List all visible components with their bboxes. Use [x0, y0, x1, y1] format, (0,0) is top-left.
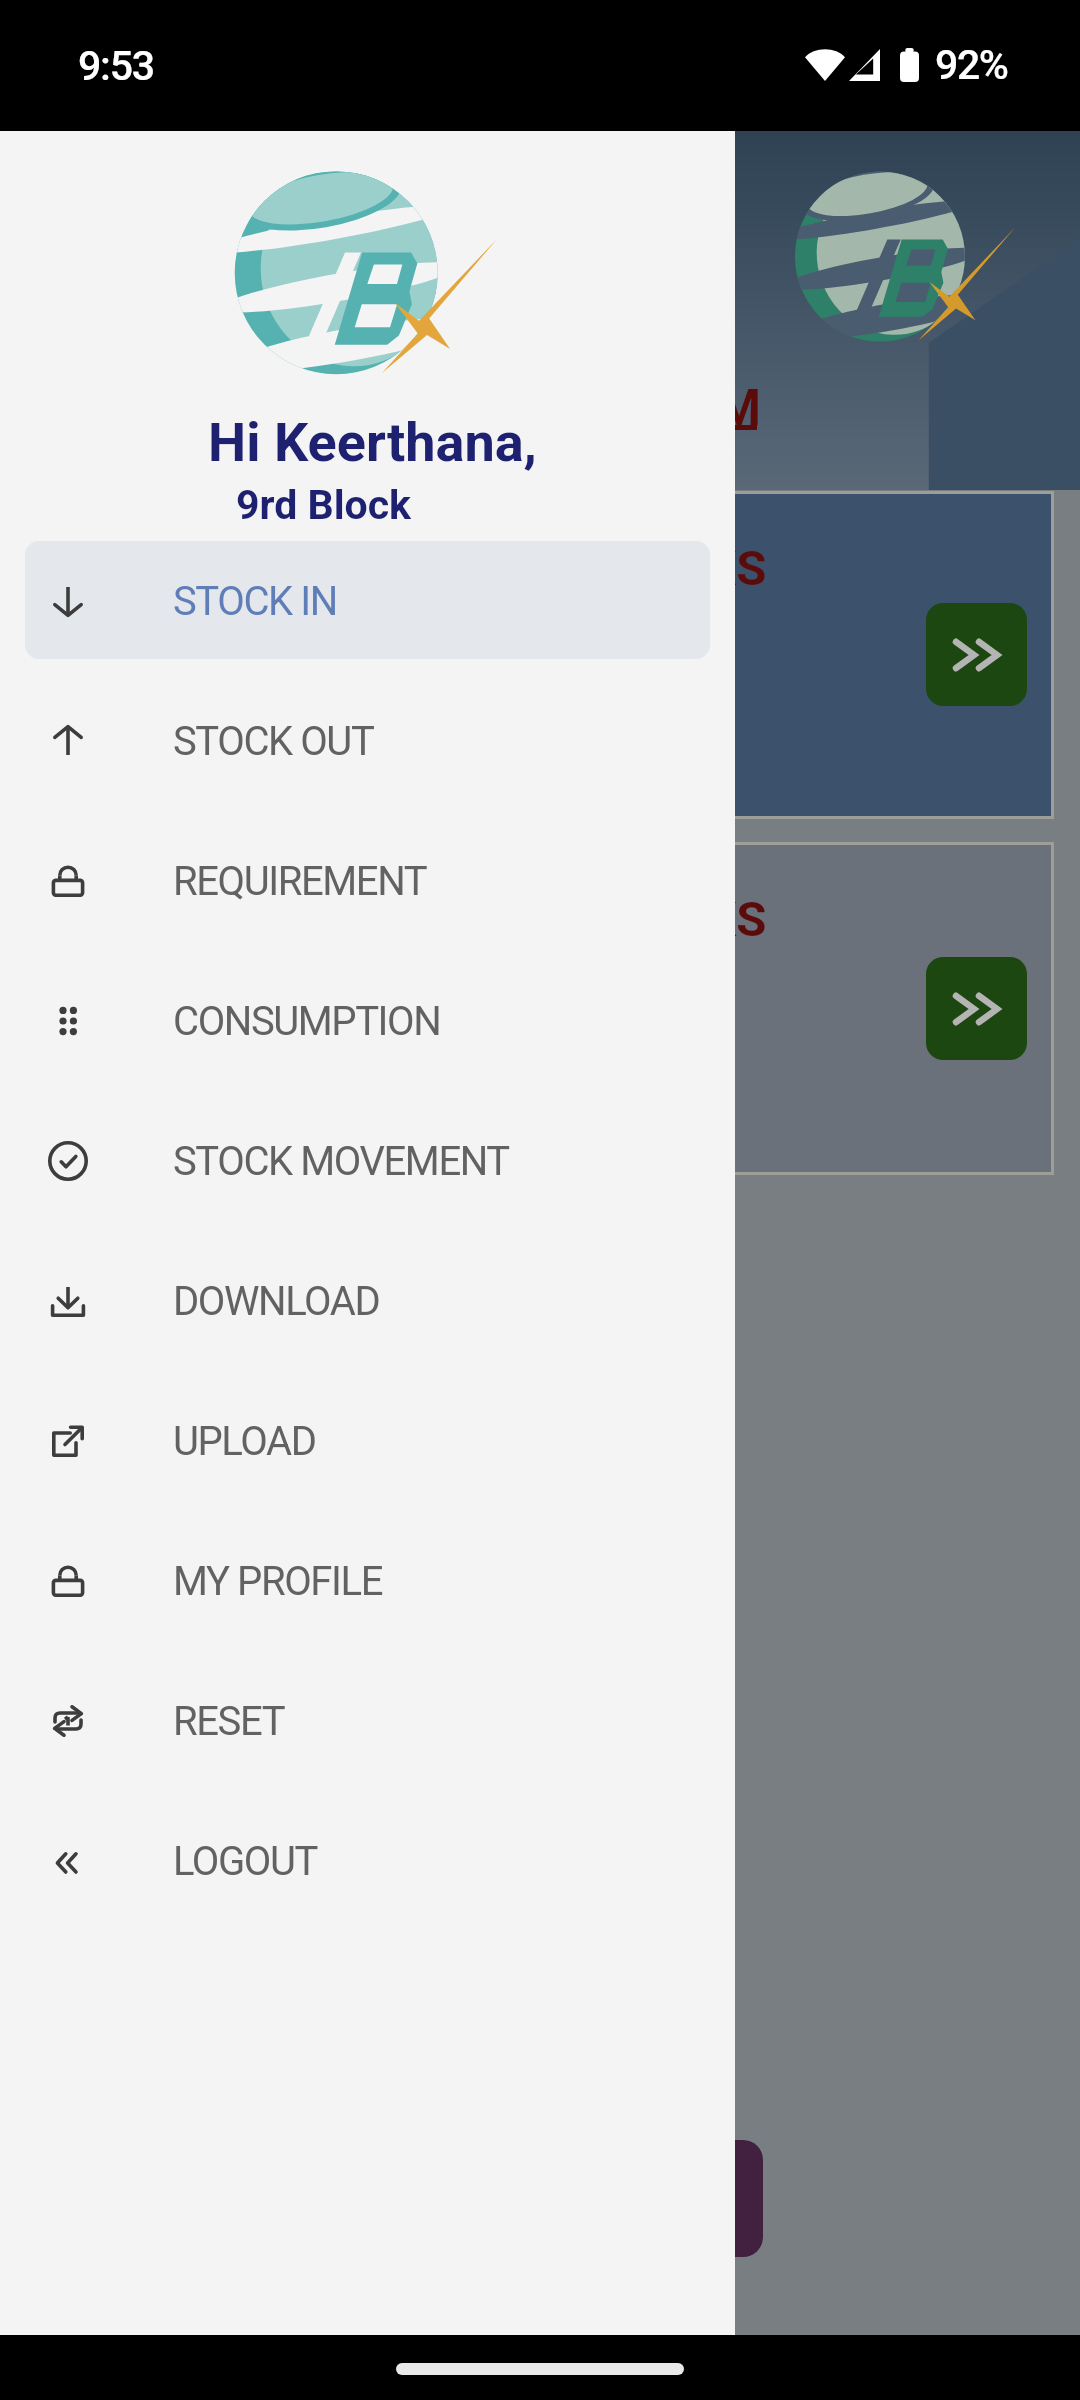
- button[interactable]: DOWNLOAD: [25, 1231, 710, 1371]
- staticText: 9:53: [78, 42, 154, 90]
- button[interactable]: STOCK OUT: [25, 671, 710, 811]
- button[interactable]: UPLOAD: [25, 1371, 710, 1511]
- button[interactable]: MY PROFILE: [25, 1511, 710, 1651]
- staticText: CONSUMPTION: [173, 998, 441, 1045]
- staticText: LOGOUT: [173, 1838, 317, 1885]
- button[interactable]: STOCK MOVEMENT: [25, 1091, 710, 1231]
- staticText: HUB STOCKS: [469, 891, 767, 948]
- staticText: UPLOAD: [173, 1418, 316, 1465]
- button[interactable]: Open HUB STOCKS: [926, 957, 1027, 1060]
- staticText: REQUIREMENT: [173, 858, 427, 905]
- staticText: 92%: [935, 41, 1008, 89]
- button[interactable]: STOCK IN: [25, 531, 710, 671]
- staticText: STOCK OUT: [173, 718, 374, 765]
- staticText: STOCK MOVEMENT: [173, 1138, 509, 1185]
- staticText: DOWNLOAD: [173, 1278, 380, 1325]
- button[interactable]: Open BLOCK STOCKS: [926, 603, 1027, 706]
- staticText: 9rd Block: [0, 481, 691, 529]
- button[interactable]: REQUIREMENT: [25, 811, 710, 951]
- staticText: BLOCK STOCKS: [414, 540, 767, 597]
- button[interactable]: HUB STOCKS: [30, 845, 1051, 1172]
- button[interactable]: CONSUMPTION: [25, 951, 710, 1091]
- staticText: STOCK IN: [173, 578, 337, 625]
- button[interactable]: BLOCK STOCKS: [30, 494, 1051, 816]
- staticText: STOCK MANAGEMENT SYSTEM: [0, 379, 949, 438]
- staticText: Hi Keerthana,: [5, 411, 740, 474]
- staticText: MY PROFILE: [173, 1558, 382, 1605]
- button[interactable]: RESET: [25, 1651, 710, 1791]
- button[interactable]: LOGOUT: [25, 1791, 710, 1931]
- staticText: RESET: [173, 1698, 285, 1745]
